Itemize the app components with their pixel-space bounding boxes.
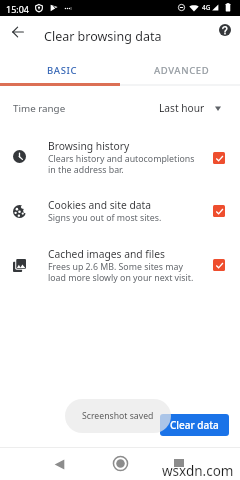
button[interactable]: Recent apps [174, 459, 184, 469]
staticText: Frees up 2.6 MB. Some sites may load mor… [48, 261, 194, 284]
button[interactable]: Home [106, 449, 134, 477]
staticText: Screenshot saved [82, 410, 154, 422]
button[interactable]: Time range [0, 95, 240, 121]
button[interactable]: Toggle Cookies and site data [213, 205, 225, 217]
button[interactable]: Browsing history [0, 136, 240, 181]
button[interactable]: Navigate up [8, 22, 28, 42]
staticText: Clear browsing data [44, 28, 162, 45]
button[interactable]: Clear data [160, 414, 229, 436]
staticText: Time range [13, 102, 66, 115]
button[interactable]: Toggle Browsing history [213, 152, 225, 164]
staticText: 15:04 [6, 3, 30, 15]
staticText: Clears history and autocompletions in th… [48, 153, 195, 176]
staticText: BASIC [47, 64, 78, 77]
button[interactable]: Back [46, 451, 73, 478]
staticText: Last hour [159, 101, 205, 115]
staticText: wsxdn.com [162, 462, 234, 480]
button[interactable]: Cached images and files [0, 244, 240, 289]
staticText: 4G [202, 3, 211, 12]
button[interactable]: ADVANCED [122, 56, 240, 84]
button[interactable]: BASIC [2, 56, 122, 84]
staticText: ADVANCED [154, 64, 210, 77]
staticText: Signs you out of most sites. [48, 212, 162, 224]
staticText: Cached images and files [48, 247, 165, 261]
button[interactable]: Screenshot saved [65, 399, 171, 433]
staticText: Clear data [170, 418, 219, 432]
staticText: Browsing history [48, 139, 130, 153]
staticText: Cookies and site data [48, 198, 152, 212]
button[interactable]: Help and feedback [214, 19, 235, 40]
button[interactable]: Toggle Cached images and files [213, 259, 225, 271]
button[interactable]: Cookies and site data [0, 195, 240, 227]
